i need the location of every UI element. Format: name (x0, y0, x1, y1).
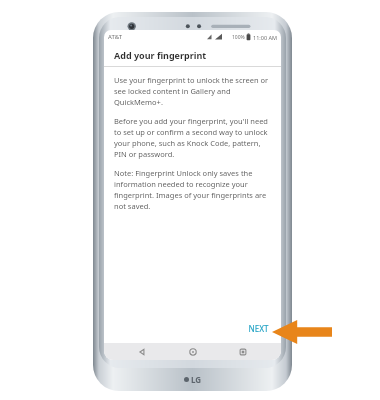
button[interactable]: Back (129, 343, 155, 360)
staticText: Use your fingerprint to unlock the scree… (114, 75, 271, 107)
button[interactable]: NEXT (236, 317, 281, 340)
button[interactable]: Home (180, 343, 206, 360)
staticText: NEXT (248, 323, 269, 334)
button[interactable]: Recent apps (230, 343, 256, 360)
staticText: LG (191, 374, 202, 385)
staticText: AT&T (108, 33, 122, 41)
staticText: 100% (232, 34, 245, 41)
staticText: Before you add your fingerprint, you'll … (114, 116, 271, 159)
staticText: Note: Fingerprint Unlock only saves the … (114, 168, 271, 211)
staticText: Add your fingerprint (114, 49, 207, 61)
staticText: 11:00 AM (253, 34, 277, 41)
